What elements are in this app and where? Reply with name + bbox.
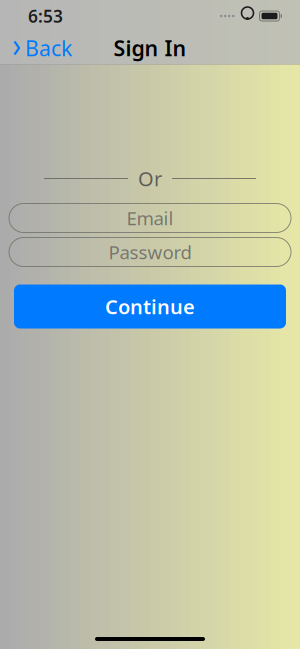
staticText: Back: [25, 34, 72, 62]
staticText: Sign In: [113, 34, 186, 62]
staticText: 6:53: [28, 4, 63, 27]
staticText: Continue: [105, 293, 195, 320]
button[interactable]: Password: [9, 237, 291, 266]
staticText: Or: [138, 165, 162, 192]
button[interactable]: Continue: [14, 284, 286, 328]
staticText: Email: [126, 206, 173, 230]
staticText: Password: [108, 240, 191, 264]
button[interactable]: Back: [4, 28, 80, 68]
button[interactable]: Email: [9, 203, 291, 232]
